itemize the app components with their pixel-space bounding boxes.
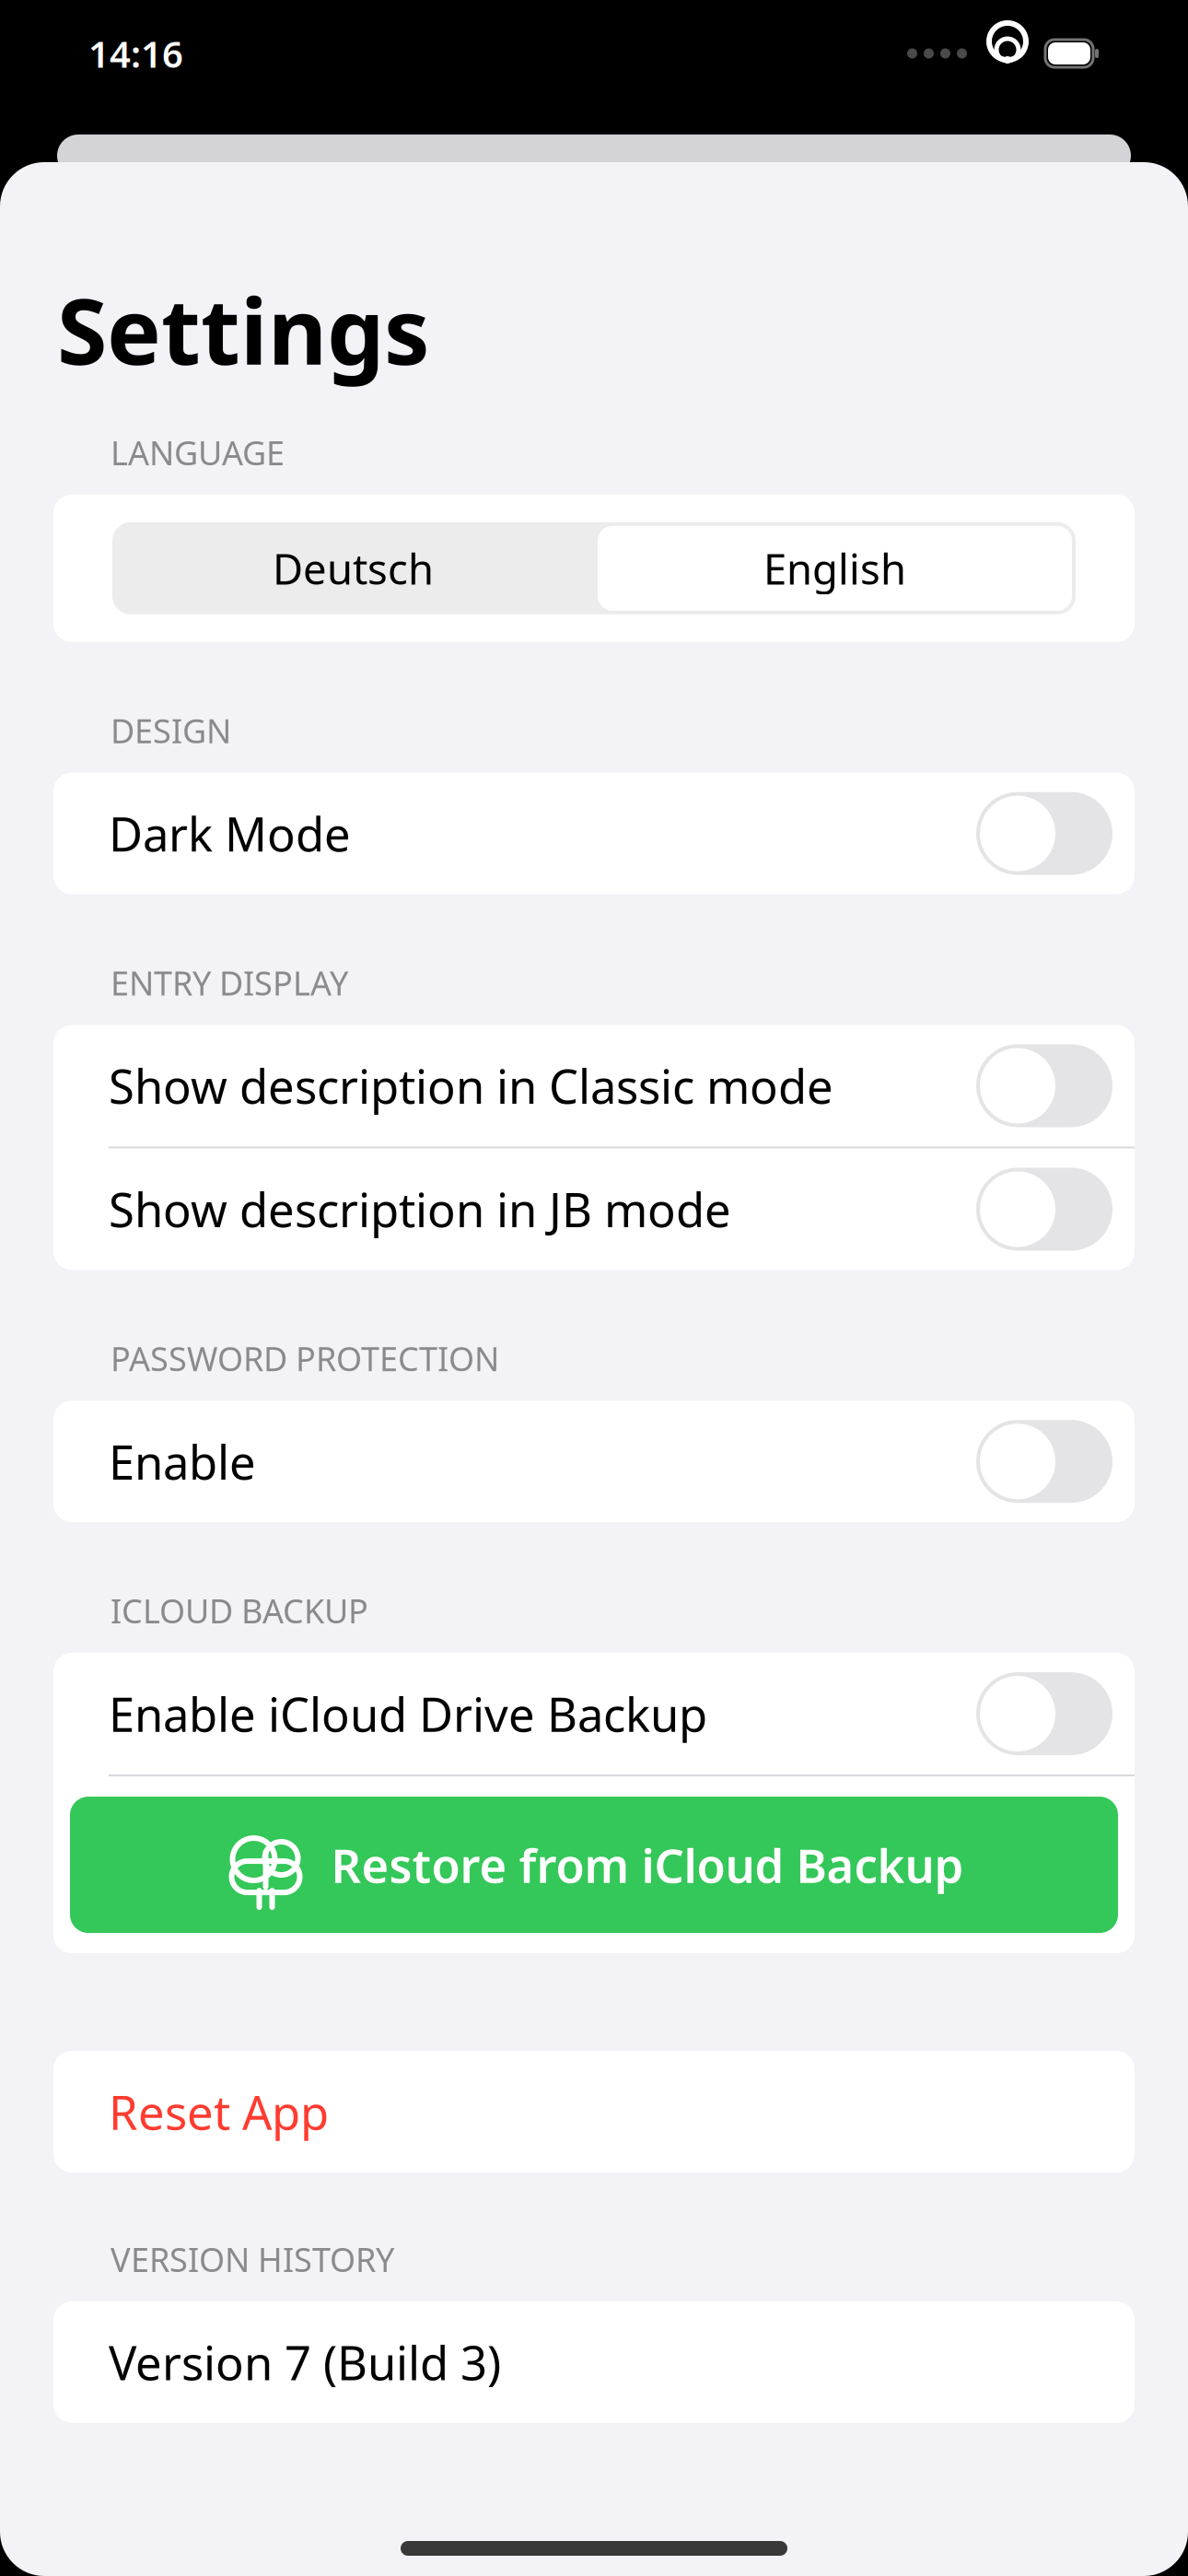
button[interactable]: Show description in Classic mode [53, 1025, 1135, 1146]
staticText: Dark Mode [109, 802, 351, 864]
staticText: English [763, 541, 906, 596]
staticText: Restore from iCloud Backup [331, 1834, 964, 1896]
button[interactable]: Dark Mode [53, 773, 1135, 894]
staticText: DESIGN [111, 708, 231, 752]
button[interactable]: Show description in JB mode [53, 1148, 1135, 1270]
button[interactable]: Restore from iCloud Backup [53, 1776, 1135, 1953]
staticText: Reset App [109, 2081, 329, 2143]
button[interactable]: Enable [53, 1401, 1135, 1522]
button[interactable]: Reset App [53, 2051, 1135, 2173]
staticText: 14:16 [88, 29, 183, 78]
staticText: VERSION HISTORY [111, 2237, 394, 2281]
staticText: ENTRY DISPLAY [111, 961, 348, 1005]
staticText: Deutsch [273, 541, 434, 596]
button[interactable]: Version 7 (Build 3) [53, 2301, 1135, 2423]
staticText: ICLOUD BACKUP [111, 1589, 368, 1633]
staticText: LANGUAGE [111, 430, 285, 474]
staticText: Settings [57, 269, 430, 390]
staticText: Version 7 (Build 3) [109, 2331, 501, 2393]
staticText: Enable [109, 1430, 256, 1492]
button[interactable]: Deutsch [112, 522, 594, 614]
button[interactable]: Enable iCloud Drive Backup [53, 1653, 1135, 1775]
staticText: Show description in JB mode [109, 1178, 731, 1240]
button[interactable]: English [594, 522, 1076, 614]
staticText: Enable iCloud Drive Backup [109, 1683, 707, 1745]
staticText: Show description in Classic mode [109, 1055, 833, 1117]
staticText: PASSWORD PROTECTION [111, 1336, 499, 1380]
